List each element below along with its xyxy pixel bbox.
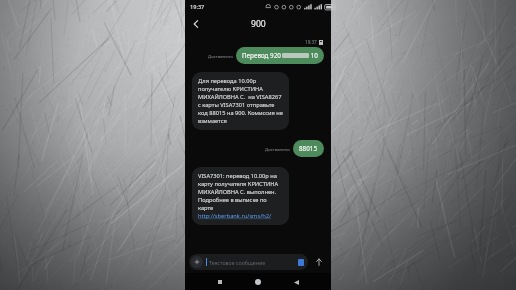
button[interactable]: Для перевода 10.00р получателю КРИСТИНА … [192,72,289,130]
button[interactable]: Перевод 920 [236,47,324,64]
button[interactable]: Home [251,275,265,289]
button[interactable]: Back [289,275,303,289]
button[interactable]: Back [187,15,205,33]
staticText: Доставлено [208,53,233,59]
staticText: 19:37 [190,3,205,11]
button[interactable]: Recents [213,275,227,289]
button[interactable]: Add attachment [189,254,308,270]
staticText: Текстовое сообщение [209,259,266,266]
button[interactable]: VISA7301: перевод 10.00р на карту получа… [192,167,289,225]
button[interactable]: http://sberbank.ru/sms/h2/ [198,212,272,220]
staticText: 10 [309,51,318,60]
staticText: 88015 [299,144,318,153]
staticText: Доставлено [265,146,290,152]
button[interactable]: 88015 [293,140,324,157]
button[interactable]: Send [311,254,327,270]
staticText: 900 [251,18,266,30]
staticText: 19:37 [305,39,317,45]
staticText: VISA7301: перевод 10.00р на карту получа… [198,172,283,212]
button[interactable]: Emoji [298,259,304,266]
staticText: Для перевода 10.00р получателю КРИСТИНА … [198,77,283,125]
staticText: Перевод 920 [242,51,281,60]
button[interactable]: Add attachment [191,256,203,268]
